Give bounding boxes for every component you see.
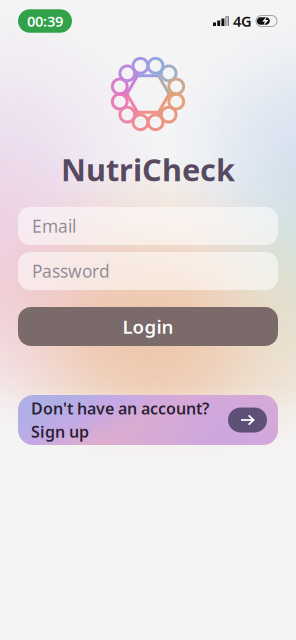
staticText: Don't have an account? (31, 398, 209, 419)
staticText: Email (32, 214, 76, 237)
staticText: 00:39 (27, 11, 63, 31)
button[interactable]: Don't have an account? (18, 395, 278, 445)
button[interactable]: Login (18, 307, 278, 346)
staticText: Password (32, 259, 110, 282)
staticText: Sign up (31, 421, 89, 442)
staticText: Login (122, 314, 173, 339)
staticText: NutriCheck (61, 149, 235, 190)
staticText: 4G (233, 11, 252, 31)
